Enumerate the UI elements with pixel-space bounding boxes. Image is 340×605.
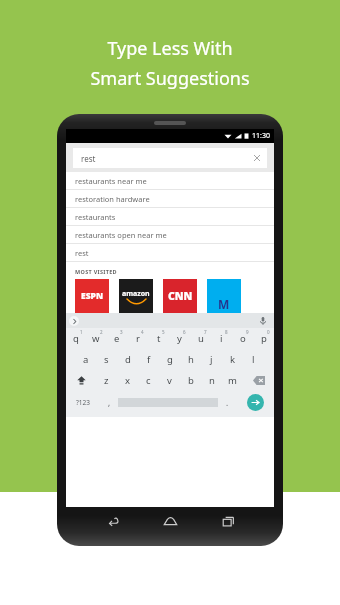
- button[interactable]: amazon: [119, 279, 153, 313]
- staticText: restaurants open near me: [75, 230, 167, 240]
- button[interactable]: l: [243, 349, 264, 370]
- button[interactable]: b: [180, 370, 201, 391]
- staticText: q: [73, 332, 79, 345]
- button[interactable]: g: [159, 349, 180, 370]
- button[interactable]: Search: [236, 391, 274, 414]
- button[interactable]: restaurants near me: [66, 172, 274, 190]
- button[interactable]: restaurants open near me: [66, 226, 274, 244]
- staticText: g: [167, 353, 173, 366]
- staticText: 0: [267, 329, 270, 335]
- button[interactable]: i: [211, 328, 232, 349]
- staticText: p: [261, 332, 267, 345]
- staticText: d: [125, 353, 131, 366]
- staticText: M: [218, 296, 230, 312]
- staticText: a: [83, 353, 89, 366]
- staticText: s: [104, 353, 109, 366]
- staticText: 11:30: [252, 131, 270, 141]
- staticText: 7: [204, 329, 207, 335]
- button[interactable]: a: [75, 349, 96, 370]
- staticText: rest: [75, 248, 89, 258]
- button[interactable]: n: [201, 370, 222, 391]
- staticText: r: [136, 332, 140, 345]
- staticText: ?123: [76, 398, 90, 407]
- staticText: 6: [183, 329, 186, 335]
- staticText: MOST VISITED: [75, 268, 117, 275]
- button[interactable]: ?123: [66, 391, 100, 414]
- button[interactable]: e: [106, 328, 127, 349]
- button[interactable]: w: [86, 328, 106, 349]
- staticText: l: [252, 353, 255, 366]
- staticText: e: [114, 332, 120, 345]
- button[interactable]: ,: [100, 391, 118, 414]
- button[interactable]: r: [127, 328, 148, 349]
- button[interactable]: Shift: [66, 370, 96, 391]
- staticText: restaurants: [75, 212, 116, 222]
- button[interactable]: p: [253, 328, 274, 349]
- button[interactable]: restaurants: [66, 208, 274, 226]
- button[interactable]: Backspace: [243, 370, 274, 391]
- button[interactable]: rest: [66, 244, 274, 262]
- staticText: j: [210, 353, 213, 366]
- button[interactable]: CNN: [163, 279, 197, 313]
- button[interactable]: o: [232, 328, 253, 349]
- staticText: .: [226, 397, 229, 408]
- button[interactable]: Expand suggestions: [69, 316, 79, 326]
- button[interactable]: f: [138, 349, 159, 370]
- button[interactable]: s: [96, 349, 117, 370]
- staticText: CNN: [168, 289, 193, 303]
- staticText: v: [167, 374, 172, 387]
- staticText: rest: [81, 153, 251, 164]
- staticText: y: [177, 332, 182, 345]
- button[interactable]: h: [180, 349, 201, 370]
- button[interactable]: k: [222, 349, 243, 370]
- staticText: 4: [141, 329, 144, 335]
- staticText: i: [220, 332, 223, 345]
- button[interactable]: restoration hardware: [66, 190, 274, 208]
- staticText: n: [209, 374, 215, 387]
- button[interactable]: v: [159, 370, 180, 391]
- staticText: o: [240, 332, 246, 345]
- button[interactable]: Voice search: [258, 316, 268, 326]
- button[interactable]: Recent apps: [217, 510, 239, 532]
- staticText: 1: [80, 329, 83, 335]
- button[interactable]: Back: [102, 510, 124, 532]
- staticText: Smart Suggestions: [90, 66, 250, 91]
- staticText: ESPN: [81, 290, 104, 302]
- button[interactable]: q: [66, 328, 86, 349]
- button[interactable]: m: [222, 370, 243, 391]
- staticText: restoration hardware: [75, 194, 150, 204]
- button[interactable]: y: [169, 328, 190, 349]
- button[interactable]: c: [138, 370, 159, 391]
- staticText: f: [147, 353, 151, 366]
- button[interactable]: M: [207, 279, 241, 313]
- button[interactable]: u: [190, 328, 211, 349]
- staticText: h: [188, 353, 194, 366]
- button[interactable]: Clear query: [251, 152, 263, 164]
- staticText: x: [125, 374, 131, 387]
- staticText: t: [157, 332, 161, 345]
- staticText: amazon: [122, 289, 150, 299]
- staticText: ,: [108, 397, 111, 408]
- staticText: m: [228, 374, 237, 387]
- staticText: b: [188, 374, 194, 387]
- staticText: 5: [162, 329, 165, 335]
- button[interactable]: j: [201, 349, 222, 370]
- button[interactable]: d: [117, 349, 138, 370]
- staticText: 3: [120, 329, 123, 335]
- staticText: restaurants near me: [75, 176, 147, 186]
- staticText: 2: [100, 329, 103, 335]
- staticText: Type Less With: [107, 36, 233, 61]
- staticText: k: [230, 353, 236, 366]
- staticText: w: [92, 332, 100, 345]
- button[interactable]: rest: [73, 148, 267, 168]
- button[interactable]: t: [148, 328, 169, 349]
- button[interactable]: x: [117, 370, 138, 391]
- staticText: c: [146, 374, 151, 387]
- button[interactable]: .: [218, 391, 236, 414]
- button[interactable]: Home: [159, 510, 181, 532]
- button[interactable]: ESPN: [75, 279, 109, 313]
- button[interactable]: z: [96, 370, 117, 391]
- staticText: 9: [246, 329, 249, 335]
- staticText: u: [198, 332, 204, 345]
